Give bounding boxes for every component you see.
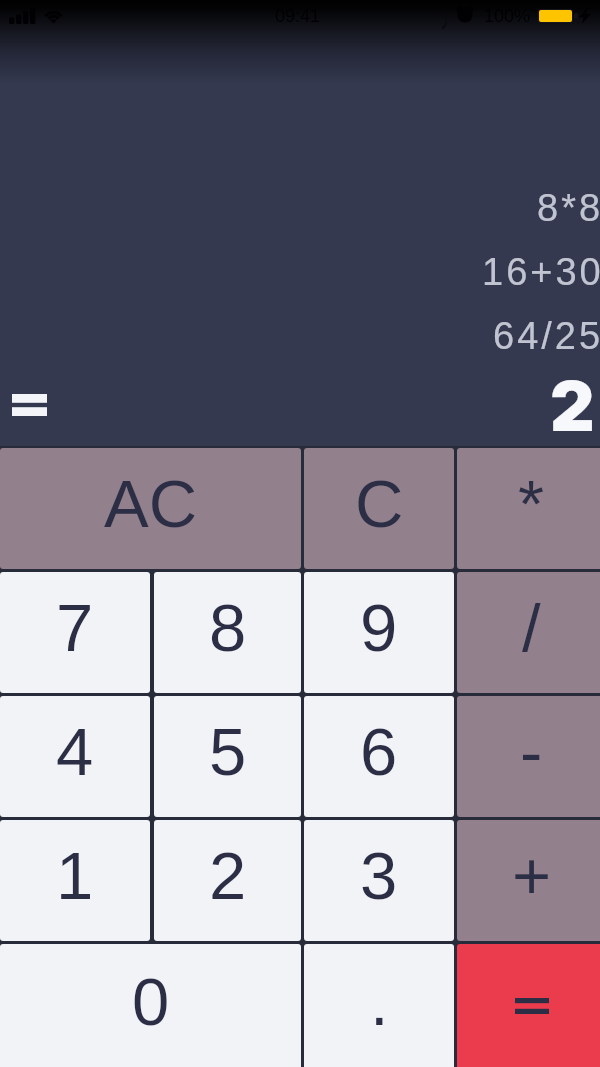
button[interactable]: 3 <box>304 820 454 941</box>
button[interactable]: 0 <box>0 944 301 1067</box>
staticText: 16+30 <box>482 251 600 293</box>
staticText: AC <box>104 466 198 541</box>
staticText: 64/25 <box>493 315 600 357</box>
staticText: 8 <box>209 590 247 665</box>
button[interactable]: Equals <box>12 394 47 416</box>
button[interactable]: + <box>457 820 600 941</box>
staticText: 1 <box>56 838 94 913</box>
staticText: 8*8 <box>537 187 600 229</box>
staticText: C <box>355 466 404 541</box>
staticText: 5 <box>209 714 247 789</box>
button[interactable]: 5 <box>154 696 301 817</box>
button[interactable]: - <box>457 696 600 817</box>
staticText: * <box>518 466 545 541</box>
button[interactable]: / <box>457 572 600 693</box>
button[interactable]: 6 <box>304 696 454 817</box>
button[interactable]: 7 <box>0 572 150 693</box>
staticText: 9 <box>360 590 398 665</box>
button[interactable]: * <box>457 448 600 569</box>
button[interactable]: 9 <box>304 572 454 693</box>
staticText: 100% <box>484 6 531 26</box>
staticText: + <box>512 838 552 913</box>
staticText: 09:41 <box>275 6 321 26</box>
staticText: / <box>522 590 541 665</box>
button[interactable]: 1 <box>0 820 150 941</box>
button[interactable]: 4 <box>0 696 150 817</box>
staticText: 3 <box>360 838 398 913</box>
button[interactable]: Equals <box>457 944 600 1067</box>
button[interactable]: 8 <box>154 572 301 693</box>
button[interactable]: AC <box>0 448 301 569</box>
staticText: 6 <box>360 714 398 789</box>
button[interactable]: C <box>304 448 454 569</box>
button[interactable]: . <box>304 944 454 1067</box>
staticText: 4 <box>56 714 94 789</box>
staticText: - <box>520 714 543 789</box>
staticText: . <box>370 964 389 1039</box>
staticText: 0 <box>132 964 170 1039</box>
staticText: 7 <box>56 590 94 665</box>
staticText: 2 <box>209 838 247 913</box>
staticText: 2 <box>550 364 595 447</box>
button[interactable]: 2 <box>154 820 301 941</box>
